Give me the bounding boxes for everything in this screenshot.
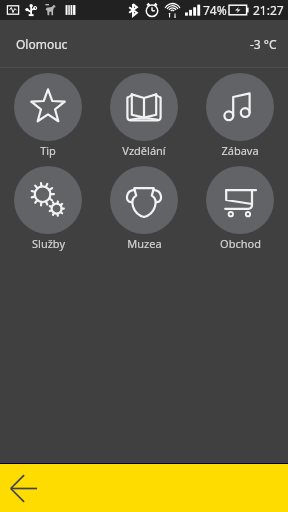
button[interactable]: Back bbox=[0, 464, 288, 512]
button[interactable]: Tip bbox=[0, 73, 96, 158]
staticText: 74% bbox=[203, 2, 227, 18]
button[interactable]: Služby bbox=[0, 166, 96, 251]
staticText: Služby bbox=[32, 236, 65, 251]
staticText: Muzea bbox=[127, 236, 162, 251]
staticText: 21:27 bbox=[253, 2, 284, 18]
button[interactable]: Muzea bbox=[96, 166, 192, 251]
staticText: Zábava bbox=[221, 143, 259, 158]
staticText: Vzdělání bbox=[122, 143, 166, 158]
staticText: Olomouc bbox=[16, 36, 68, 52]
button[interactable]: Zábava bbox=[192, 73, 288, 158]
staticText: Obchod bbox=[220, 236, 261, 251]
staticText: Tip bbox=[40, 143, 56, 158]
button[interactable]: Obchod bbox=[192, 166, 288, 251]
button[interactable]: Vzdělání bbox=[96, 73, 192, 158]
staticText: -3 °C bbox=[250, 36, 277, 52]
